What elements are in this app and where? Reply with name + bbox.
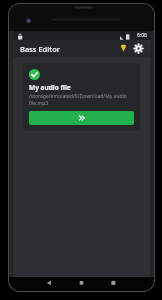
staticText: /storage/emulated/0/Download/My audio fi… [29,93,134,106]
button[interactable]: Recents [106,277,154,291]
staticText: My audio file [29,83,71,92]
button[interactable]: Back [9,277,58,291]
button[interactable]: Home [58,277,106,291]
button[interactable]: Continue [29,111,134,125]
button[interactable]: Settings [132,42,145,55]
staticText: 6:06 [137,32,147,39]
staticText: Bass Editor [20,44,60,54]
button[interactable]: Premium [117,42,130,55]
